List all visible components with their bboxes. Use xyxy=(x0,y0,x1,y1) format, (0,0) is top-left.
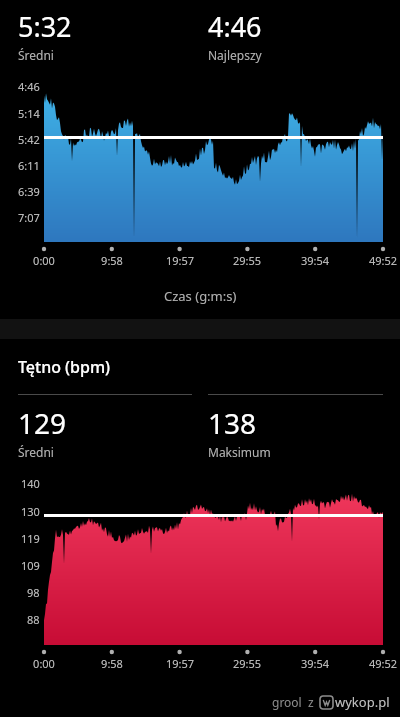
staticText: 49:52 xyxy=(363,656,400,671)
staticText: 49:52 xyxy=(363,253,400,268)
staticText: 5:42 xyxy=(18,132,40,147)
staticText: Średni xyxy=(18,444,54,460)
staticText: grool z xyxy=(272,694,314,710)
staticText: 39:54 xyxy=(295,253,335,268)
staticText: 88 xyxy=(27,612,40,627)
other: wykop logo xyxy=(320,696,333,709)
staticText: 130 xyxy=(21,504,40,519)
button[interactable]: Tętno (bpm) xyxy=(18,356,111,378)
button[interactable]: 129 xyxy=(18,404,208,460)
staticText: 9:58 xyxy=(92,656,132,671)
staticText: 5:32 xyxy=(18,8,72,45)
staticText: 6:11 xyxy=(18,158,40,173)
staticText: 129 xyxy=(18,404,67,442)
staticText: Średni xyxy=(18,47,54,63)
staticText: 0:00 xyxy=(24,253,64,268)
staticText: Najlepszy xyxy=(208,47,262,63)
staticText: 9:58 xyxy=(92,253,132,268)
button[interactable]: 5:32 xyxy=(18,8,208,63)
button[interactable]: 4:46 xyxy=(208,8,262,63)
staticText: 4:46 xyxy=(208,8,262,45)
staticText: 6:39 xyxy=(18,184,40,199)
staticText: 4:46 xyxy=(18,79,40,94)
staticText: Maksimum xyxy=(208,444,271,460)
staticText: 138 xyxy=(208,404,257,442)
staticText: 19:57 xyxy=(160,656,200,671)
staticText: 109 xyxy=(21,558,40,573)
staticText: 98 xyxy=(27,585,40,600)
staticText: Czas (g:m:s) xyxy=(164,287,237,305)
staticText: 0:00 xyxy=(24,656,64,671)
staticText: 7:07 xyxy=(18,210,40,225)
staticText: wykop.pl xyxy=(335,693,390,711)
staticText: 140 xyxy=(21,476,40,491)
staticText: Tętno (bpm) xyxy=(18,356,111,378)
button[interactable]: 138 xyxy=(208,404,271,460)
staticText: 5:14 xyxy=(18,106,40,121)
staticText: 19:57 xyxy=(160,253,200,268)
staticText: 29:55 xyxy=(227,656,267,671)
staticText: 39:54 xyxy=(295,656,335,671)
staticText: 119 xyxy=(21,531,40,546)
staticText: 29:55 xyxy=(227,253,267,268)
